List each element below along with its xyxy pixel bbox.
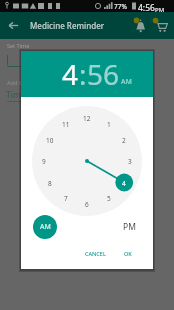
button[interactable]: PM xyxy=(115,215,143,239)
staticText: PM xyxy=(123,221,136,233)
staticText: 7 xyxy=(64,194,68,203)
staticText: : xyxy=(79,55,87,93)
staticText: Time xyxy=(6,89,26,101)
staticText: Set Time xyxy=(7,42,30,49)
button[interactable]: 5 xyxy=(102,191,116,205)
staticText: AM xyxy=(121,77,132,87)
button[interactable]: 2 xyxy=(117,133,131,147)
staticText: 4 xyxy=(122,179,126,188)
staticText: 8 xyxy=(48,179,52,188)
staticText: 6 xyxy=(85,200,89,209)
staticText: 3 xyxy=(128,157,132,166)
button[interactable]: 3 xyxy=(123,154,137,168)
staticText: 77% xyxy=(114,2,127,11)
staticText: AM xyxy=(40,222,51,232)
button[interactable]: 12 xyxy=(80,111,94,125)
staticText: CANCEL xyxy=(85,250,106,257)
button[interactable]: 7 xyxy=(59,191,73,205)
staticText: Add Medicine xyxy=(7,79,43,86)
staticText: Medicine Reminder xyxy=(30,20,105,31)
button[interactable]: 10 xyxy=(43,133,57,147)
staticText: 10 xyxy=(46,136,54,145)
button[interactable]: 1 xyxy=(102,117,116,131)
staticText: 5 xyxy=(107,194,111,203)
button[interactable]: 6 xyxy=(80,197,94,211)
button[interactable]: Cart xyxy=(153,16,169,32)
button[interactable]: Notifications xyxy=(133,16,148,31)
button[interactable]: 8 xyxy=(43,176,57,190)
button[interactable]: AM xyxy=(33,215,57,239)
button[interactable]: CANCEL xyxy=(80,245,111,261)
staticText: 56 xyxy=(87,55,120,93)
button[interactable]: 4 xyxy=(117,176,131,190)
staticText: OK xyxy=(124,250,132,257)
staticText: 11 xyxy=(62,120,70,129)
button[interactable]: 4 xyxy=(62,55,79,93)
staticText: 9 xyxy=(42,157,46,166)
button[interactable]: 11 xyxy=(59,117,73,131)
staticText: PM xyxy=(155,6,165,14)
button[interactable]: 9 xyxy=(37,154,51,168)
staticText: 1 xyxy=(107,120,111,129)
button[interactable]: OK xyxy=(117,245,138,261)
staticText: 4 xyxy=(62,55,79,93)
button[interactable]: Back xyxy=(7,19,20,32)
staticText: 4:56 xyxy=(138,2,155,14)
staticText: 2 xyxy=(122,136,126,145)
button[interactable]: 56 xyxy=(87,55,120,93)
staticText: 12 xyxy=(83,114,91,123)
